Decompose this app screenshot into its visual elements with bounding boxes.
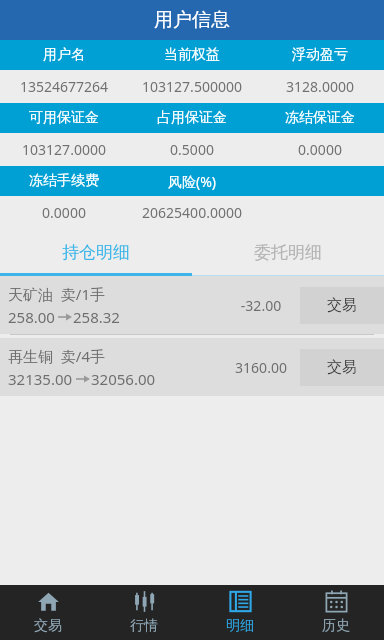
staticText: 3128.0000	[256, 77, 384, 96]
staticText: 0.5000	[128, 140, 256, 159]
staticText: 冻结保证金	[256, 109, 384, 127]
staticText: 103127.0000	[0, 140, 128, 159]
button[interactable]: 持仓明细	[0, 229, 192, 276]
staticText: 浮动盈亏	[256, 46, 384, 64]
staticText: 行情	[130, 617, 158, 635]
button[interactable]: 再生铜 卖/4手	[0, 338, 384, 396]
staticText: 天矿油 卖/1手	[8, 284, 105, 304]
staticText: 用户名	[0, 46, 128, 64]
button[interactable]: 行情	[96, 585, 192, 640]
button[interactable]: 委托明细	[192, 229, 384, 276]
staticText: 3160.00	[222, 358, 300, 377]
button[interactable]: 历史	[288, 585, 384, 640]
staticText: 当前权益	[128, 46, 256, 64]
staticText: 258.32	[73, 307, 120, 327]
staticText: 13524677264	[0, 77, 128, 96]
staticText: 103127.500000	[128, 77, 256, 96]
button[interactable]: 天矿油 卖/1手	[0, 276, 384, 334]
staticText: 持仓明细	[62, 242, 130, 263]
staticText: 32056.00	[91, 369, 156, 389]
staticText: 32135.00	[8, 369, 73, 389]
staticText: 交易	[34, 617, 62, 635]
staticText: 用户信息	[154, 8, 230, 32]
staticText: 委托明细	[254, 242, 322, 263]
staticText: 258.00	[8, 307, 55, 327]
staticText: 风险(%)	[128, 172, 256, 191]
button[interactable]: 交易	[0, 585, 96, 640]
staticText: 历史	[322, 617, 350, 635]
button[interactable]: 交易	[300, 287, 384, 324]
staticText: 0.0000	[256, 140, 384, 159]
staticText: 交易	[327, 358, 357, 377]
staticText: 可用保证金	[0, 109, 128, 127]
staticText: 交易	[327, 296, 357, 315]
staticText: 明细	[226, 617, 254, 635]
staticText: 占用保证金	[128, 109, 256, 127]
button[interactable]: 明细	[192, 585, 288, 640]
staticText: -32.00	[222, 296, 300, 315]
staticText: 20625400.0000	[128, 203, 256, 222]
button[interactable]: 交易	[300, 349, 384, 386]
staticText: 0.0000	[0, 203, 128, 222]
staticText: 冻结手续费	[0, 172, 128, 190]
staticText: 再生铜 卖/4手	[8, 346, 105, 366]
